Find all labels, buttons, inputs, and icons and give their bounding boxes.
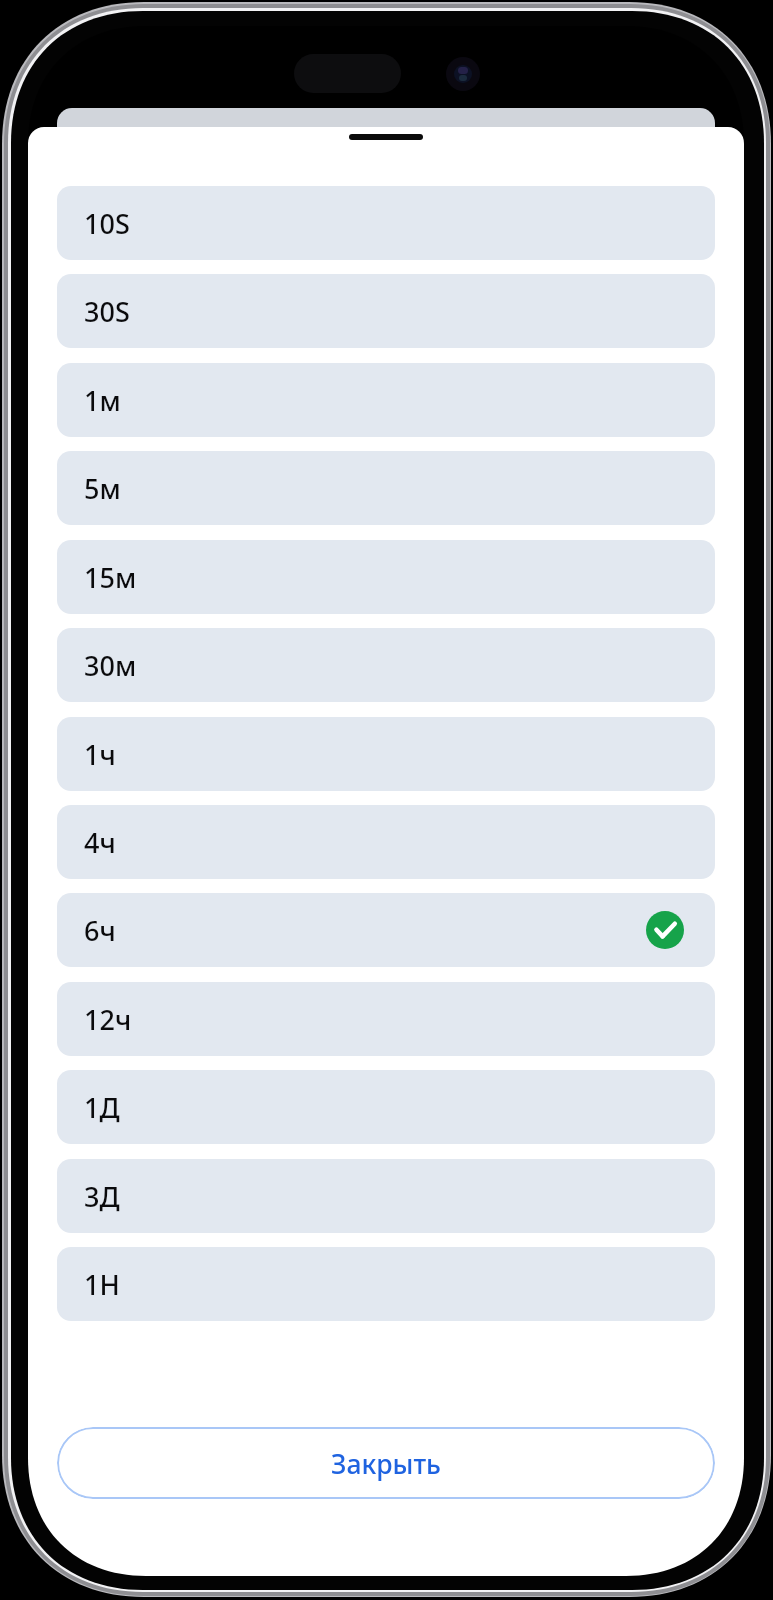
staticText: 30м — [84, 647, 137, 684]
button[interactable]: 30S — [57, 274, 715, 348]
button[interactable]: 30м — [57, 628, 715, 702]
button[interactable]: 15м — [57, 540, 715, 614]
button[interactable]: 6ч — [57, 893, 715, 967]
button[interactable]: 1м — [57, 363, 715, 437]
button[interactable]: Закрыть — [57, 1427, 715, 1499]
staticText: 1м — [84, 382, 121, 419]
button[interactable]: 1Н — [57, 1247, 715, 1321]
staticText: 5м — [84, 470, 121, 507]
staticText: 1Д — [84, 1089, 120, 1126]
staticText: 12ч — [84, 1001, 132, 1038]
button[interactable]: 5м — [57, 451, 715, 525]
button[interactable]: 3Д — [57, 1159, 715, 1233]
button[interactable]: 12ч — [57, 982, 715, 1056]
staticText: 6ч — [84, 912, 116, 949]
button[interactable]: 10S — [57, 186, 715, 260]
staticText: 15м — [84, 559, 137, 596]
button[interactable]: 1Д — [57, 1070, 715, 1144]
staticText: 10S — [84, 205, 130, 242]
button[interactable]: 1ч — [57, 717, 715, 791]
staticText: 1ч — [84, 736, 116, 773]
staticText: 4ч — [84, 824, 116, 861]
staticText: Закрыть — [331, 1446, 441, 1482]
staticText: 1Н — [84, 1266, 120, 1303]
other: Selected — [646, 911, 684, 949]
staticText: 30S — [84, 293, 130, 330]
button[interactable]: 4ч — [57, 805, 715, 879]
staticText: 3Д — [84, 1178, 120, 1215]
